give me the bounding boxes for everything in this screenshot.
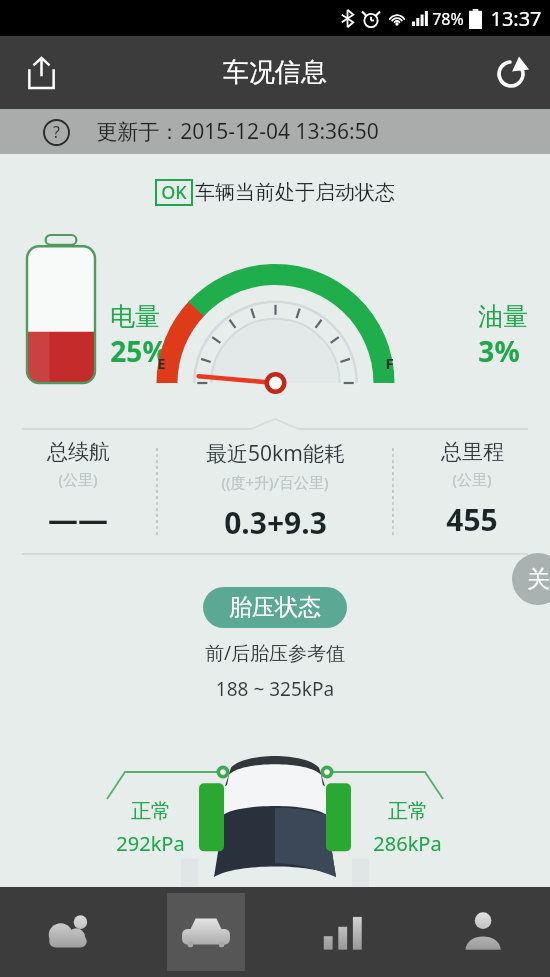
staticText: 正常 xyxy=(131,799,171,824)
staticText: 25% xyxy=(110,332,168,370)
staticText: OK xyxy=(161,180,187,205)
staticText: ((度+升)/百公里) xyxy=(221,472,329,492)
staticText: 0.3+9.3 xyxy=(224,502,327,543)
staticText: 286kPa xyxy=(373,830,442,857)
staticText: 车况信息 xyxy=(223,56,327,89)
staticText: (公里) xyxy=(58,469,98,489)
staticText: 胎压状态 xyxy=(229,593,321,622)
staticText: 455 xyxy=(446,499,498,540)
staticText: 总里程 xyxy=(441,439,504,465)
button[interactable]: Refresh xyxy=(486,48,536,98)
staticText: —— xyxy=(48,499,108,540)
staticText: 78% xyxy=(432,8,464,30)
button[interactable]: 胎压状态 xyxy=(203,587,347,628)
button[interactable]: 最近50km能耗 xyxy=(158,431,392,553)
staticText: 前/后胎压参考值 xyxy=(0,640,550,666)
staticText: (公里) xyxy=(452,469,492,489)
staticText: 292kPa xyxy=(116,830,185,857)
staticText: 更新于：2015-12-04 13:36:50 xyxy=(96,117,379,146)
button[interactable]: 总里程 xyxy=(394,431,550,553)
staticText: 正常 xyxy=(388,799,428,824)
button[interactable]: 总续航 xyxy=(0,431,156,553)
button[interactable]: ? xyxy=(0,109,550,154)
staticText: 电量 xyxy=(110,301,160,332)
button[interactable]: Profile xyxy=(412,887,550,977)
button[interactable]: Weather xyxy=(0,887,137,977)
staticText: F xyxy=(385,353,394,373)
staticText: 关 xyxy=(527,565,550,594)
staticText: E xyxy=(157,353,166,373)
button[interactable]: Share xyxy=(16,48,66,98)
button[interactable]: Vehicle xyxy=(137,887,274,977)
staticText: 最近50km能耗 xyxy=(206,439,345,468)
staticText: 188 ~ 325kPa xyxy=(0,676,550,702)
staticText: 油量 xyxy=(478,301,528,332)
staticText: ? xyxy=(53,121,60,143)
staticText: 车辆当前处于启动状态 xyxy=(195,180,395,205)
button[interactable]: Statistics xyxy=(274,887,412,977)
staticText: 13:37 xyxy=(490,5,542,32)
button[interactable]: Close xyxy=(512,553,550,605)
staticText: 总续航 xyxy=(47,439,110,465)
staticText: 3% xyxy=(478,332,520,370)
